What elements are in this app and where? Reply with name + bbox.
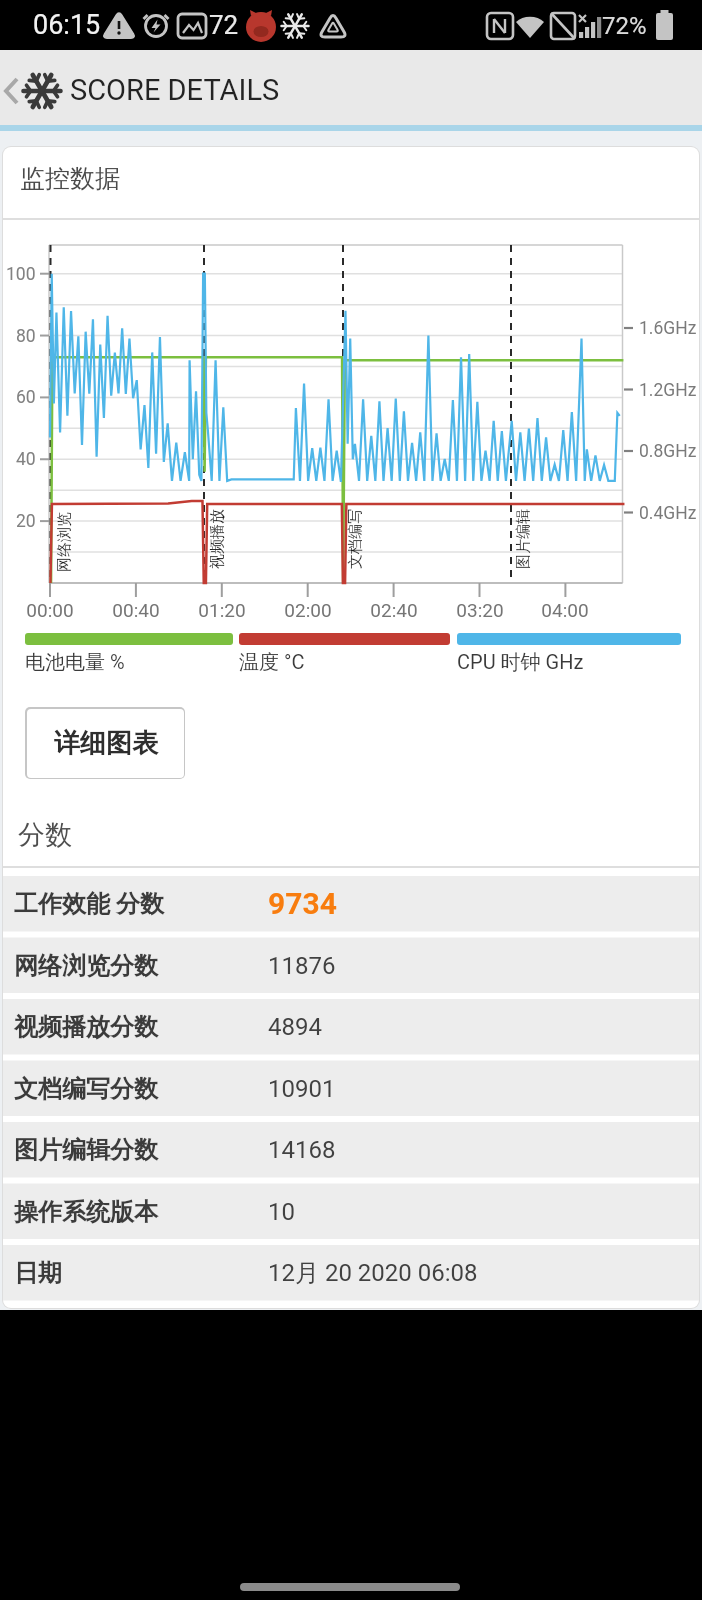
staticText: 分数 bbox=[18, 818, 72, 852]
staticText: 详细图表 bbox=[54, 727, 158, 760]
staticText: 日期 bbox=[14, 1258, 62, 1288]
staticText: 02:00 bbox=[284, 599, 332, 621]
button[interactable]: 工作效能 分数 bbox=[3, 876, 699, 931]
staticText: 03:20 bbox=[456, 599, 504, 621]
staticText: 11876 bbox=[268, 952, 336, 980]
staticText: 文档编写 bbox=[346, 509, 365, 569]
staticText: 工作效能 分数 bbox=[14, 889, 164, 919]
staticText: 监控数据 bbox=[20, 163, 120, 194]
staticText: 温度 °C bbox=[239, 650, 305, 675]
staticText: 电池电量 % bbox=[25, 650, 125, 675]
staticText: 02:40 bbox=[370, 599, 418, 621]
staticText: 10901 bbox=[268, 1075, 336, 1103]
staticText: 40 bbox=[16, 449, 36, 470]
staticText: 80 bbox=[16, 326, 36, 347]
button[interactable]: 操作系统版本 bbox=[3, 1184, 699, 1239]
staticText: 视频播放分数 bbox=[14, 1012, 158, 1042]
staticText: 4894 bbox=[268, 1013, 322, 1041]
staticText: 网络浏览 bbox=[55, 512, 74, 572]
button[interactable]: 文档编写分数 bbox=[3, 1061, 699, 1116]
staticText: 操作系统版本 bbox=[14, 1197, 158, 1227]
staticText: 00:40 bbox=[112, 599, 160, 621]
staticText: 100 bbox=[6, 264, 36, 285]
staticText: 00:00 bbox=[26, 599, 74, 621]
staticText: 20 bbox=[16, 511, 36, 532]
staticText: 72 bbox=[209, 10, 239, 40]
staticText: 72% bbox=[602, 12, 647, 40]
staticText: 01:20 bbox=[198, 599, 246, 621]
staticText: 14168 bbox=[268, 1136, 336, 1164]
staticText: 网络浏览分数 bbox=[14, 951, 158, 981]
staticText: 图片编辑分数 bbox=[14, 1135, 158, 1165]
button[interactable]: 网络浏览分数 bbox=[3, 938, 699, 993]
staticText: 图片编辑 bbox=[514, 509, 533, 569]
button[interactable] bbox=[0, 50, 64, 125]
staticText: 文档编写分数 bbox=[14, 1074, 158, 1104]
staticText: 0.4GHz bbox=[639, 503, 697, 524]
button[interactable]: 视频播放分数 bbox=[3, 999, 699, 1054]
staticText: 1.6GHz bbox=[639, 318, 697, 339]
staticText: 12月 20 2020 06:08 bbox=[268, 1258, 478, 1288]
staticText: 0.8GHz bbox=[639, 441, 697, 462]
staticText: 06:15 bbox=[33, 9, 101, 41]
staticText: SCORE DETAILS bbox=[70, 73, 280, 107]
staticText: 视频播放 bbox=[208, 509, 227, 569]
button[interactable]: 详细图表 bbox=[25, 707, 185, 779]
button[interactable]: 日期 bbox=[3, 1245, 699, 1300]
staticText: 10 bbox=[268, 1198, 295, 1226]
staticText: 9734 bbox=[268, 886, 337, 921]
staticText: 1.2GHz bbox=[639, 380, 697, 401]
staticText: 04:00 bbox=[541, 599, 589, 621]
button[interactable]: 图片编辑分数 bbox=[3, 1122, 699, 1177]
staticText: CPU 时钟 GHz bbox=[457, 650, 584, 675]
staticText: 60 bbox=[16, 387, 36, 408]
